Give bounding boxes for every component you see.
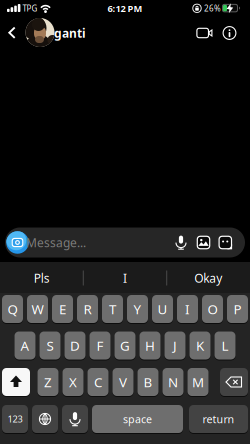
button[interactable]: T: [102, 294, 123, 323]
staticText: Q: [7, 300, 17, 318]
button[interactable]: [7, 26, 17, 39]
button[interactable]: Pls: [2, 263, 82, 293]
staticText: return: [202, 412, 234, 426]
button[interactable]: [174, 234, 188, 250]
staticText: Okay: [194, 270, 222, 286]
staticText: U: [157, 300, 167, 318]
button[interactable]: W: [27, 294, 48, 323]
button[interactable]: K: [189, 331, 210, 360]
staticText: E: [59, 300, 66, 318]
staticText: J: [173, 337, 177, 354]
staticText: G: [120, 337, 130, 354]
button[interactable]: [62, 404, 88, 433]
staticText: 26%: [204, 3, 221, 14]
button[interactable]: R: [77, 294, 98, 323]
button[interactable]: [5, 227, 245, 257]
button[interactable]: [218, 236, 232, 249]
button[interactable]: B: [137, 367, 158, 396]
button[interactable]: E: [52, 294, 73, 323]
button[interactable]: ganti: [54, 25, 86, 41]
staticText: Y: [133, 300, 141, 318]
button[interactable]: F: [89, 331, 110, 360]
button[interactable]: Okay: [168, 263, 248, 293]
staticText: I: [123, 270, 127, 286]
staticText: K: [196, 337, 204, 354]
button[interactable]: A: [14, 331, 35, 360]
button[interactable]: S: [39, 331, 60, 360]
staticText: A: [20, 337, 29, 354]
button[interactable]: P: [227, 294, 248, 323]
staticText: Pls: [34, 270, 50, 286]
button[interactable]: [196, 26, 213, 39]
button[interactable]: J: [164, 331, 185, 360]
staticText: P: [233, 300, 241, 318]
staticText: C: [94, 373, 102, 391]
button[interactable]: I: [177, 294, 198, 323]
button[interactable]: N: [162, 367, 183, 396]
button[interactable]: [222, 26, 236, 40]
button[interactable]: [6, 231, 29, 254]
button[interactable]: D: [64, 331, 85, 360]
staticText: Z: [44, 373, 52, 391]
staticText: I: [185, 300, 190, 318]
staticText: D: [70, 337, 80, 354]
button[interactable]: H: [139, 331, 160, 360]
staticText: V: [119, 373, 127, 391]
button[interactable]: return: [189, 404, 248, 433]
staticText: 6:12 PM: [107, 2, 142, 14]
staticText: ganti: [54, 25, 86, 41]
button[interactable]: [197, 236, 210, 249]
button[interactable]: M: [187, 367, 208, 396]
staticText: R: [83, 300, 91, 318]
button[interactable]: X: [62, 367, 83, 396]
button[interactable]: L: [214, 331, 235, 360]
staticText: 123: [7, 413, 22, 425]
button[interactable]: C: [87, 367, 108, 396]
staticText: TPG: [22, 3, 37, 14]
staticText: N: [168, 373, 178, 391]
staticText: X: [69, 373, 77, 391]
button[interactable]: space: [92, 404, 183, 433]
button[interactable]: [25, 18, 54, 47]
button[interactable]: I: [85, 263, 165, 293]
button[interactable]: Q: [2, 294, 23, 323]
button[interactable]: G: [114, 331, 135, 360]
staticText: S: [46, 337, 53, 354]
button[interactable]: [220, 367, 248, 396]
button[interactable]: [32, 404, 58, 433]
staticText: B: [143, 373, 152, 391]
staticText: T: [109, 300, 116, 318]
button[interactable]: U: [152, 294, 173, 323]
staticText: F: [96, 337, 103, 354]
button[interactable]: Z: [37, 367, 58, 396]
staticText: M: [192, 373, 204, 391]
staticText: W: [31, 300, 43, 318]
staticText: L: [221, 337, 228, 354]
button[interactable]: Y: [127, 294, 148, 323]
button[interactable]: 123: [2, 404, 28, 433]
staticText: O: [207, 300, 217, 318]
staticText: H: [145, 337, 155, 354]
button[interactable]: [2, 367, 30, 396]
button[interactable]: V: [112, 367, 133, 396]
button[interactable]: O: [202, 294, 223, 323]
staticText: Message...: [26, 234, 86, 250]
staticText: space: [123, 412, 152, 426]
